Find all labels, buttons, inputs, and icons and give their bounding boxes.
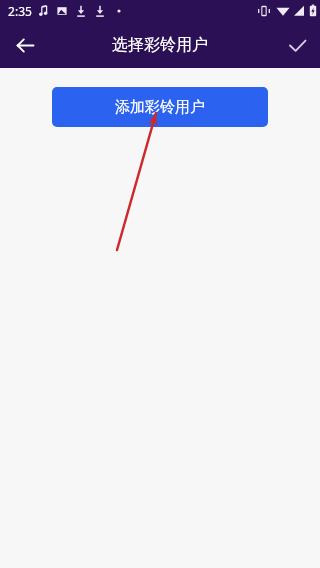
staticText: 2:35 bbox=[8, 3, 32, 19]
staticText: 选择彩铃用户 bbox=[112, 35, 208, 55]
staticText: 添加彩铃用户 bbox=[115, 98, 205, 117]
button[interactable]: 添加彩铃用户 bbox=[52, 87, 268, 127]
button[interactable]: Confirm bbox=[276, 24, 318, 66]
button[interactable]: Back bbox=[4, 24, 46, 66]
